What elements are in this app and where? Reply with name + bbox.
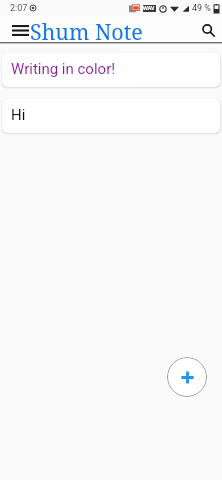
button[interactable]: Writing in color!	[2, 53, 220, 87]
staticText: WAVE	[143, 5, 156, 12]
staticText: Hi	[11, 106, 26, 124]
staticText: 49 %	[192, 3, 211, 14]
staticText: 2:07	[10, 3, 28, 14]
button[interactable]: Menu	[10, 20, 30, 40]
button[interactable]: Hi	[2, 99, 220, 133]
button[interactable]: Add note	[167, 357, 207, 397]
button[interactable]: Search	[198, 20, 218, 40]
staticText: Writing in color!	[11, 60, 116, 78]
staticText: Shum Note	[30, 17, 143, 45]
